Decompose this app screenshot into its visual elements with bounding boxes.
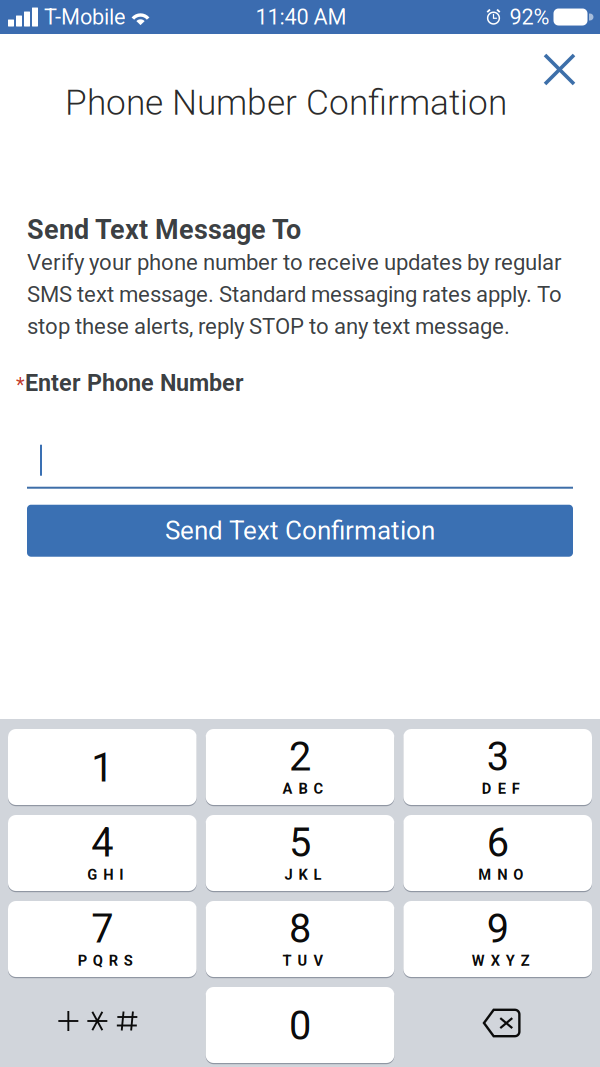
- button[interactable]: 4: [8, 815, 197, 891]
- staticText: TUV: [282, 952, 323, 969]
- staticText: 2: [289, 734, 311, 780]
- staticText: T-Mobile: [44, 4, 126, 30]
- button[interactable]: Symbols: [8, 987, 197, 1063]
- staticText: Send Text Confirmation: [165, 515, 435, 546]
- staticText: 92%: [509, 4, 549, 30]
- staticText: 7: [91, 906, 113, 952]
- button[interactable]: Delete: [403, 987, 592, 1063]
- staticText: Verify your phone number to receive upda…: [27, 250, 562, 339]
- staticText: ABC: [282, 780, 323, 797]
- button[interactable]: 0: [206, 987, 394, 1063]
- button[interactable]: 8: [206, 901, 394, 977]
- staticText: WXYZ: [472, 952, 530, 969]
- staticText: 3: [487, 734, 509, 780]
- staticText: 11:40 AM: [255, 4, 346, 30]
- staticText: 1: [91, 745, 113, 791]
- button[interactable]: 3: [403, 729, 592, 805]
- staticText: 9: [487, 906, 509, 952]
- staticText: 0: [289, 1003, 311, 1049]
- button[interactable]: 9: [403, 901, 592, 977]
- staticText: PQRS: [78, 952, 133, 969]
- button[interactable]: Close: [543, 34, 600, 86]
- button[interactable]: 7: [8, 901, 197, 977]
- staticText: GHI: [87, 866, 123, 883]
- staticText: Enter Phone Number: [25, 369, 244, 397]
- staticText: 8: [289, 906, 311, 952]
- staticText: 4: [91, 820, 113, 866]
- staticText: Send Text Message To: [27, 214, 301, 246]
- button[interactable]: Send Text Confirmation: [27, 505, 573, 557]
- button[interactable]: 5: [206, 815, 394, 891]
- button[interactable]: 6: [403, 815, 592, 891]
- staticText: 6: [487, 820, 509, 866]
- staticText: *: [16, 373, 25, 397]
- button[interactable]: 2: [206, 729, 394, 805]
- staticText: JKL: [284, 866, 321, 883]
- button[interactable]: 1: [8, 729, 197, 805]
- staticText: MNO: [478, 866, 523, 883]
- staticText: 5: [289, 820, 311, 866]
- staticText: Phone Number Confirmation: [65, 82, 507, 123]
- staticText: DEF: [482, 780, 520, 797]
